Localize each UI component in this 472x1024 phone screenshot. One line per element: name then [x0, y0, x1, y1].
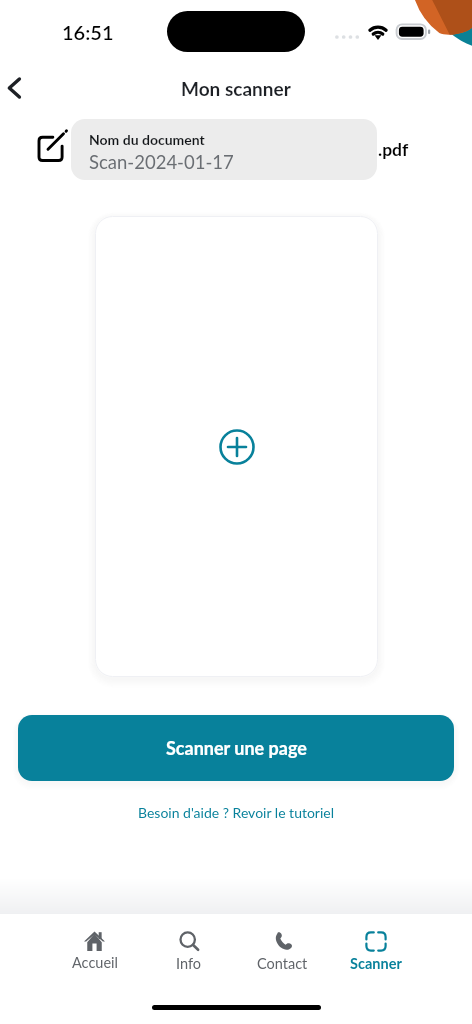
- button[interactable]: Besoin d'aide ? Revoir le tutoriel: [134, 800, 339, 825]
- staticText: Nom du document: [89, 131, 205, 148]
- button[interactable]: Contact: [235, 929, 329, 974]
- button[interactable]: Edit document name: [0, 119, 71, 180]
- button[interactable]: Accueil: [48, 929, 141, 973]
- staticText: Scanner: [350, 955, 402, 972]
- button[interactable]: Back: [0, 70, 32, 106]
- staticText: Scanner une page: [166, 737, 307, 759]
- staticText: Contact: [257, 955, 308, 972]
- button[interactable]: Info: [141, 929, 235, 974]
- staticText: 16:51: [62, 20, 114, 44]
- button[interactable]: Nom du document: [71, 119, 377, 180]
- staticText: Info: [176, 955, 201, 972]
- button[interactable]: Scanner une page: [18, 715, 454, 781]
- button[interactable]: Add page: [213, 423, 261, 471]
- staticText: Accueil: [72, 954, 118, 971]
- staticText: Scan-2024-01-17: [89, 151, 234, 173]
- staticText: .pdf: [378, 139, 409, 160]
- button[interactable]: Scanner: [329, 929, 423, 974]
- staticText: Mon scanner: [181, 77, 291, 100]
